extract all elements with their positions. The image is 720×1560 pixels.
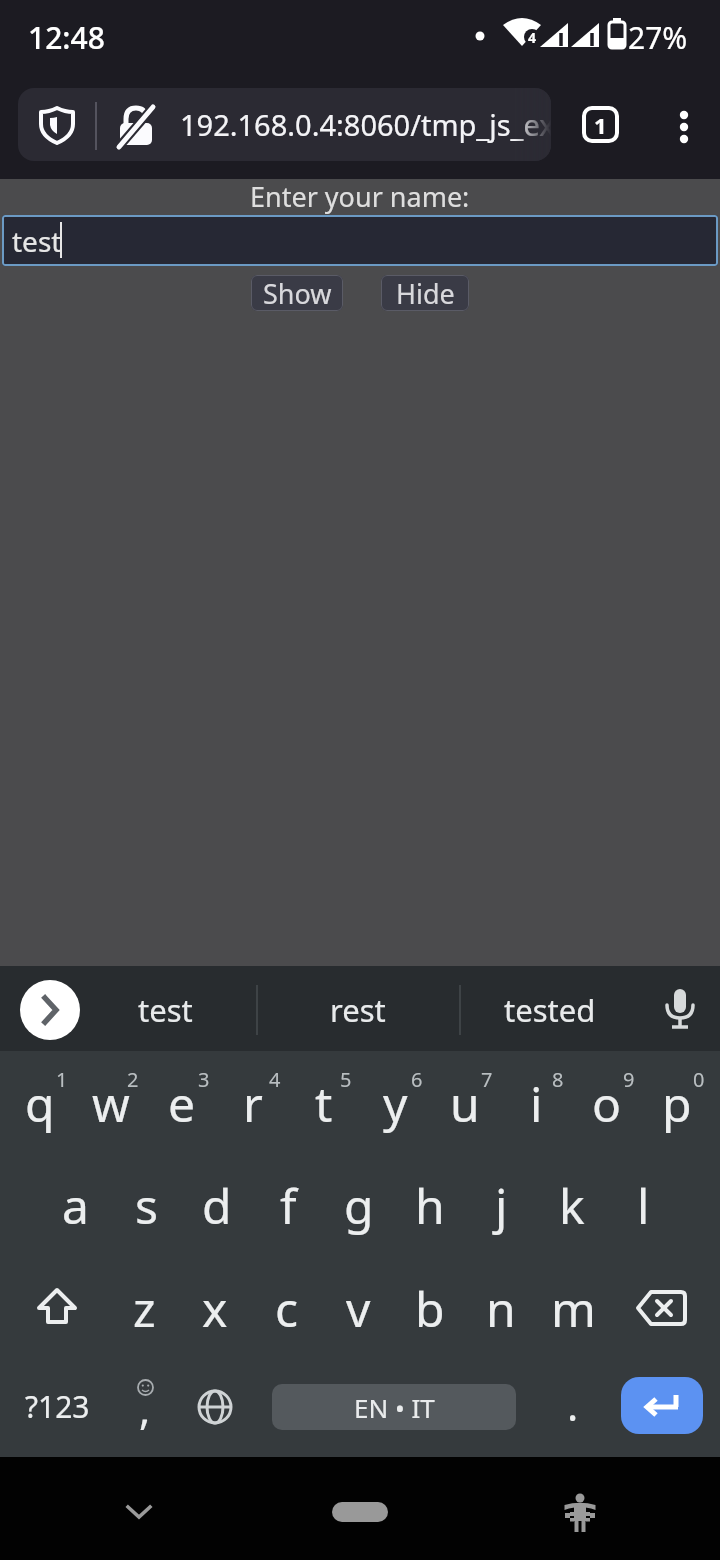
button[interactable] xyxy=(77,1055,145,1151)
button[interactable] xyxy=(6,1055,74,1151)
button[interactable] xyxy=(112,1156,180,1252)
staticText: 192.168.0.4:8060/tmp_js_ex xyxy=(180,105,551,144)
button[interactable] xyxy=(431,1055,499,1151)
button[interactable] xyxy=(181,1258,249,1354)
button[interactable] xyxy=(361,1055,429,1151)
button[interactable] xyxy=(110,1360,180,1452)
button[interactable] xyxy=(573,1055,641,1151)
button[interactable] xyxy=(662,985,698,1035)
button[interactable] xyxy=(538,1156,606,1252)
staticText: ?123 xyxy=(25,1386,90,1427)
staticText: , xyxy=(139,1380,151,1437)
staticText: Show xyxy=(263,275,332,311)
button[interactable] xyxy=(332,1502,388,1522)
staticText: e xyxy=(168,1071,196,1136)
button[interactable]: 192.168.0.4:8060/tmp_js_ex xyxy=(18,88,551,161)
staticText: . xyxy=(567,1376,579,1433)
staticText: 0 xyxy=(693,1066,705,1093)
staticText: Enter your name: xyxy=(250,178,470,215)
staticText: 4 xyxy=(528,28,537,47)
staticText: 5 xyxy=(340,1066,352,1093)
staticText: l xyxy=(637,1173,650,1238)
button[interactable] xyxy=(219,1055,287,1151)
button[interactable] xyxy=(467,1258,535,1354)
button[interactable]: EN • IT xyxy=(272,1384,516,1430)
staticText: t xyxy=(315,1071,333,1136)
button[interactable] xyxy=(122,1498,156,1526)
button[interactable]: rest xyxy=(290,975,426,1045)
button[interactable] xyxy=(670,100,698,152)
staticText: b xyxy=(415,1276,445,1341)
button[interactable] xyxy=(196,1388,234,1426)
button[interactable] xyxy=(20,980,80,1040)
button[interactable] xyxy=(539,1258,607,1354)
staticText: j xyxy=(495,1173,508,1238)
staticText: 6 xyxy=(411,1066,423,1093)
staticText: 3 xyxy=(198,1066,210,1093)
staticText: s xyxy=(135,1173,158,1238)
button[interactable] xyxy=(254,1156,322,1252)
staticText: test xyxy=(12,222,62,260)
staticText: z xyxy=(133,1276,156,1341)
staticText: 27% xyxy=(628,17,688,58)
button[interactable] xyxy=(396,1258,464,1354)
staticText: w xyxy=(92,1071,130,1136)
staticText: 7 xyxy=(481,1066,493,1093)
button[interactable]: test xyxy=(2,215,718,266)
button[interactable] xyxy=(41,1156,109,1252)
staticText: a xyxy=(62,1173,89,1238)
staticText: f xyxy=(280,1173,297,1238)
staticText: k xyxy=(559,1173,585,1238)
staticText: 2 xyxy=(127,1066,139,1093)
staticText: q xyxy=(25,1071,55,1136)
staticText: 12:48 xyxy=(28,17,105,58)
button[interactable]: Hide xyxy=(381,275,469,311)
button[interactable] xyxy=(324,1258,392,1354)
staticText: g xyxy=(344,1173,374,1238)
staticText: test xyxy=(138,989,193,1031)
button[interactable]: Show xyxy=(251,275,343,311)
staticText: 8 xyxy=(552,1066,564,1093)
button[interactable]: tested xyxy=(480,975,620,1045)
button[interactable]: ?123 xyxy=(15,1360,100,1452)
button[interactable] xyxy=(183,1156,251,1252)
staticText: EN • IT xyxy=(354,1390,435,1425)
staticText: 1 xyxy=(56,1066,68,1093)
staticText: c xyxy=(275,1276,299,1341)
staticText: x xyxy=(202,1276,228,1341)
button[interactable] xyxy=(643,1055,711,1151)
button[interactable] xyxy=(110,1258,178,1354)
staticText: h xyxy=(415,1173,445,1238)
staticText: r xyxy=(243,1071,263,1136)
staticText: m xyxy=(551,1276,596,1341)
staticText: p xyxy=(662,1071,692,1136)
button[interactable] xyxy=(563,1490,597,1534)
button[interactable] xyxy=(635,1288,687,1328)
staticText: i xyxy=(530,1071,543,1136)
button[interactable] xyxy=(396,1156,464,1252)
staticText: rest xyxy=(330,989,386,1031)
staticText: v xyxy=(346,1276,371,1341)
button[interactable]: 1 xyxy=(582,106,619,143)
button[interactable] xyxy=(325,1156,393,1252)
staticText: 1 xyxy=(594,110,607,140)
staticText: y xyxy=(383,1071,408,1136)
staticText: Hide xyxy=(396,275,455,311)
button[interactable] xyxy=(502,1055,570,1151)
button[interactable] xyxy=(540,1360,606,1452)
staticText: tested xyxy=(504,989,596,1031)
staticText: u xyxy=(450,1071,480,1136)
button[interactable] xyxy=(33,1284,81,1332)
button[interactable] xyxy=(148,1055,216,1151)
staticText: 9 xyxy=(623,1066,635,1093)
button[interactable]: test xyxy=(97,975,233,1045)
button[interactable] xyxy=(621,1377,703,1434)
staticText: d xyxy=(202,1173,232,1238)
staticText: 4 xyxy=(269,1066,281,1093)
staticText: o xyxy=(592,1071,622,1136)
button[interactable] xyxy=(609,1156,677,1252)
button[interactable] xyxy=(290,1055,358,1151)
staticText: n xyxy=(486,1276,516,1341)
button[interactable] xyxy=(467,1156,535,1252)
button[interactable] xyxy=(253,1258,321,1354)
